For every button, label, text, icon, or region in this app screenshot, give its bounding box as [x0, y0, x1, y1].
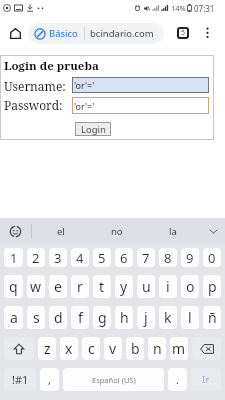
button[interactable]: More options [196, 22, 218, 44]
button[interactable]: 4 [71, 248, 89, 267]
button[interactable]: la [145, 218, 201, 244]
staticText: f [78, 308, 83, 327]
button[interactable]: ñ [203, 306, 221, 329]
button[interactable]: g [93, 306, 111, 329]
button[interactable]: 1 [4, 248, 23, 267]
button[interactable]: no [89, 218, 145, 244]
staticText: 5 [181, 28, 186, 38]
button[interactable]: 8 [159, 248, 177, 267]
button[interactable]: b [126, 337, 144, 360]
staticText: 7 [142, 249, 150, 267]
button[interactable]: Home [4, 22, 26, 44]
staticText: b [131, 339, 140, 358]
staticText: Básico [49, 27, 78, 40]
staticText: 8 [164, 249, 172, 267]
staticText: bcindario.com [90, 27, 154, 40]
staticText: a [10, 308, 18, 327]
button[interactable]: Básico [28, 23, 164, 44]
staticText: Username: [4, 78, 66, 94]
staticText: 3 [54, 249, 62, 267]
button[interactable]: t [93, 275, 111, 298]
staticText: Login [81, 123, 106, 136]
staticText: !#1 [12, 372, 29, 387]
button[interactable]: Shift [4, 337, 34, 360]
button[interactable]: v [104, 337, 122, 360]
button[interactable]: 7 [137, 248, 155, 267]
button[interactable]: 2 [27, 248, 45, 267]
staticText: l [188, 308, 192, 327]
button[interactable]: i [159, 275, 177, 298]
button[interactable]: 'or'=' [72, 97, 209, 114]
staticText: z [44, 339, 51, 358]
staticText: h [120, 308, 129, 327]
button[interactable]: . [168, 368, 187, 391]
button[interactable]: Backspace [192, 337, 221, 360]
staticText: m [172, 339, 186, 358]
button[interactable]: Tabs [172, 22, 194, 44]
staticText: p [208, 277, 217, 296]
button[interactable]: Login [75, 122, 111, 136]
button[interactable]: e [49, 275, 67, 298]
button[interactable]: 0 [203, 248, 221, 267]
staticText: . [176, 372, 179, 387]
button[interactable]: el [32, 218, 89, 244]
staticText: 0 [208, 249, 216, 267]
button[interactable]: d [49, 306, 67, 329]
button[interactable]: c [82, 337, 100, 360]
button[interactable]: 'or'=' [72, 77, 209, 93]
button[interactable]: k [159, 306, 177, 329]
button[interactable]: w [27, 275, 45, 298]
button[interactable]: Español (US) [63, 368, 164, 391]
staticText: ñ [208, 308, 217, 327]
staticText: u [142, 277, 151, 296]
button[interactable]: , [40, 368, 59, 391]
staticText: el [57, 225, 65, 238]
button[interactable]: j [137, 306, 155, 329]
staticText: k [164, 308, 172, 327]
button[interactable]: x [60, 337, 78, 360]
button[interactable]: More suggestions [201, 218, 225, 244]
staticText: 5 [98, 249, 106, 267]
staticText: x [65, 339, 73, 358]
staticText: c [88, 339, 95, 358]
button[interactable]: !#1 [4, 368, 36, 391]
button[interactable]: p [203, 275, 221, 298]
button[interactable]: Emoji [0, 218, 31, 244]
button[interactable]: a [4, 306, 23, 329]
staticText: 'or'=' [74, 79, 95, 91]
button[interactable]: f [71, 306, 89, 329]
staticText: , [48, 372, 51, 387]
button[interactable]: s [27, 306, 45, 329]
staticText: t [99, 277, 105, 296]
button[interactable]: 5 [93, 248, 111, 267]
button[interactable]: y [115, 275, 133, 298]
staticText: 'or'=' [74, 100, 95, 112]
staticText: y [120, 277, 128, 296]
button[interactable]: n [148, 337, 166, 360]
staticText: j [144, 308, 148, 327]
staticText: w [30, 277, 42, 296]
button[interactable]: Ir [191, 368, 221, 391]
staticText: 14% [171, 3, 186, 13]
button[interactable]: 3 [49, 248, 67, 267]
staticText: q [9, 277, 18, 296]
staticText: la [169, 225, 177, 238]
button[interactable]: m [170, 337, 188, 360]
button[interactable]: 9 [181, 248, 199, 267]
staticText: e [54, 277, 62, 296]
button[interactable]: z [38, 337, 56, 360]
staticText: 6 [120, 249, 128, 267]
button[interactable]: l [181, 306, 199, 329]
staticText: 07:31 [194, 3, 215, 14]
button[interactable]: o [181, 275, 199, 298]
staticText: Login de prueba [4, 58, 99, 74]
staticText: s [33, 308, 40, 327]
button[interactable]: 6 [115, 248, 133, 267]
button[interactable]: h [115, 306, 133, 329]
staticText: i [166, 277, 170, 296]
staticText: g [98, 308, 107, 327]
staticText: Ir [202, 373, 210, 386]
button[interactable]: r [71, 275, 89, 298]
button[interactable]: u [137, 275, 155, 298]
button[interactable]: q [4, 275, 23, 298]
